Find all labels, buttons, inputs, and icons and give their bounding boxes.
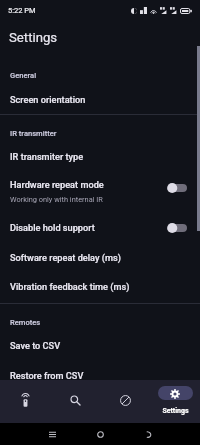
button[interactable]: IR transmiter type	[0, 142, 200, 171]
button[interactable]: Hardware repeat mode	[0, 179, 200, 203]
staticText: Working only with internal IR	[10, 195, 103, 204]
button[interactable]: Restore from CSV	[0, 361, 200, 390]
staticText: Settings	[9, 30, 58, 45]
staticText: IR transmitter	[10, 129, 57, 138]
staticText: General	[10, 71, 37, 80]
staticText: 5:22 PM	[8, 6, 36, 15]
staticText: Vibration feedback time (ms)	[10, 281, 130, 292]
staticText: IR transmiter type	[10, 151, 84, 162]
staticText: Save to CSV	[10, 340, 61, 351]
button[interactable]: Software repeat delay (ms)	[0, 243, 200, 272]
staticText: Hardware repeat mode	[10, 179, 104, 190]
button[interactable]: Blocked	[100, 380, 150, 423]
staticText: Screen orientation	[10, 94, 86, 105]
button[interactable]: Vibration feedback time (ms)	[0, 272, 200, 301]
staticText: Remotes	[10, 318, 41, 327]
button[interactable]: Settings	[150, 380, 200, 423]
staticText: Restore from CSV	[10, 370, 84, 381]
button[interactable]: Home	[76, 423, 124, 445]
button[interactable]: Remotes	[0, 380, 50, 423]
button[interactable]: Recents	[28, 423, 76, 445]
staticText: Settings	[162, 407, 189, 415]
button[interactable]: Back	[124, 423, 172, 445]
button[interactable]: Save to CSV	[0, 331, 200, 360]
button[interactable]: Screen orientation	[0, 85, 200, 114]
staticText: Disable hold support	[10, 222, 167, 233]
staticText: Software repeat delay (ms)	[10, 252, 121, 263]
button[interactable]: Disable hold support	[0, 213, 200, 242]
button[interactable]: Search	[50, 380, 100, 423]
